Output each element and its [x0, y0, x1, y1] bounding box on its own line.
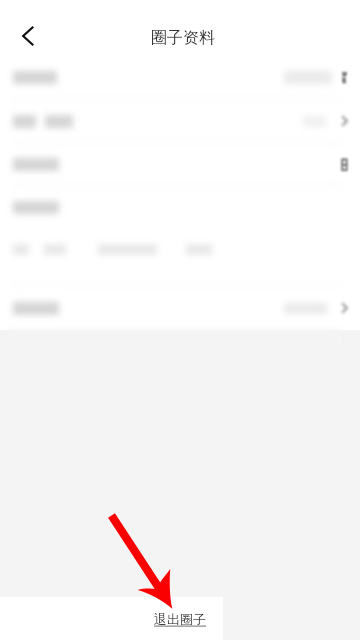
staticText: 退出圈子 — [154, 611, 206, 627]
button[interactable]: 退出圈子 — [142, 605, 218, 633]
staticText: 圈子资料 — [151, 28, 215, 48]
button[interactable]: Back — [7, 15, 49, 57]
